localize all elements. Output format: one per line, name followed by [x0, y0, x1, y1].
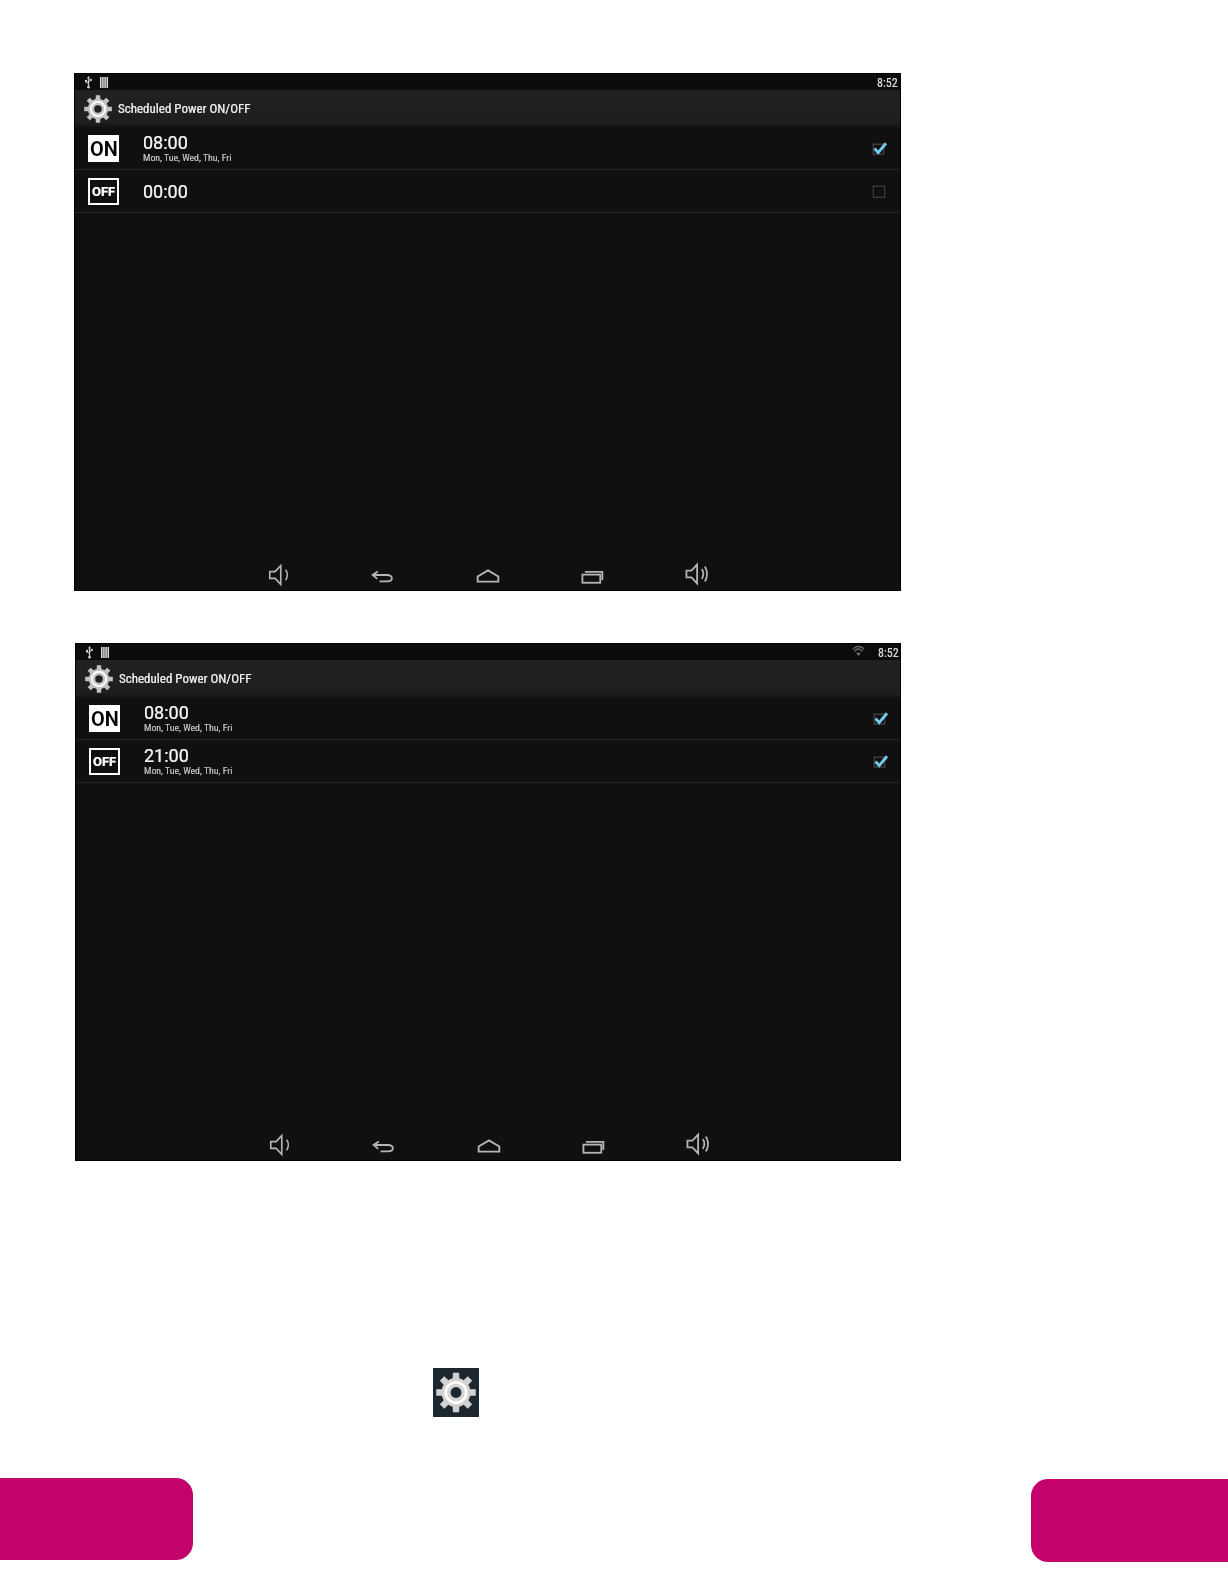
- staticText: ON: [91, 707, 119, 730]
- staticText: 21:00: [144, 745, 189, 766]
- button[interactable]: Volume down: [261, 517, 295, 590]
- staticText: Mon, Tue, Wed, Thu, Fri: [144, 722, 233, 733]
- staticText: Scheduled Power ON/OFF: [118, 101, 251, 116]
- staticText: 00:00: [143, 181, 188, 202]
- staticText: OFF: [92, 184, 116, 199]
- staticText: 08:00: [144, 702, 189, 723]
- button[interactable]: Recent apps: [576, 517, 610, 590]
- button[interactable]: Volume up: [680, 517, 714, 590]
- staticText: Mon, Tue, Wed, Thu, Fri: [144, 765, 233, 776]
- button[interactable]: ON: [76, 697, 900, 739]
- button[interactable]: ON: [75, 127, 900, 169]
- staticText: ON: [90, 137, 118, 160]
- button[interactable]: Volume down: [262, 1087, 296, 1160]
- button[interactable]: Home: [471, 517, 505, 590]
- button[interactable]: Scheduled Power ON/OFF: [76, 660, 900, 697]
- button[interactable]: OFF: [75, 170, 900, 212]
- button[interactable]: Scheduled Power ON/OFF: [75, 90, 900, 127]
- staticText: 8:52: [878, 646, 899, 660]
- button[interactable]: Enable power off: [865, 176, 891, 208]
- button[interactable]: Volume up: [681, 1087, 715, 1160]
- button[interactable]: Enable power on: [866, 703, 892, 735]
- button[interactable]: OFF: [76, 740, 900, 782]
- button[interactable]: Back: [366, 517, 400, 590]
- staticText: Scheduled Power ON/OFF: [119, 671, 252, 686]
- button[interactable]: Scheduled Power ON/OFF app icon: [433, 1368, 479, 1417]
- staticText: Mon, Tue, Wed, Thu, Fri: [143, 152, 232, 163]
- staticText: 08:00: [143, 132, 188, 153]
- button[interactable]: Enable power on: [865, 133, 891, 165]
- staticText: OFF: [93, 754, 117, 769]
- button[interactable]: Home: [472, 1087, 506, 1160]
- button[interactable]: Back: [367, 1087, 401, 1160]
- button[interactable]: Recent apps: [577, 1087, 611, 1160]
- staticText: 8:52: [877, 76, 898, 90]
- button[interactable]: Enable power off: [866, 746, 892, 778]
